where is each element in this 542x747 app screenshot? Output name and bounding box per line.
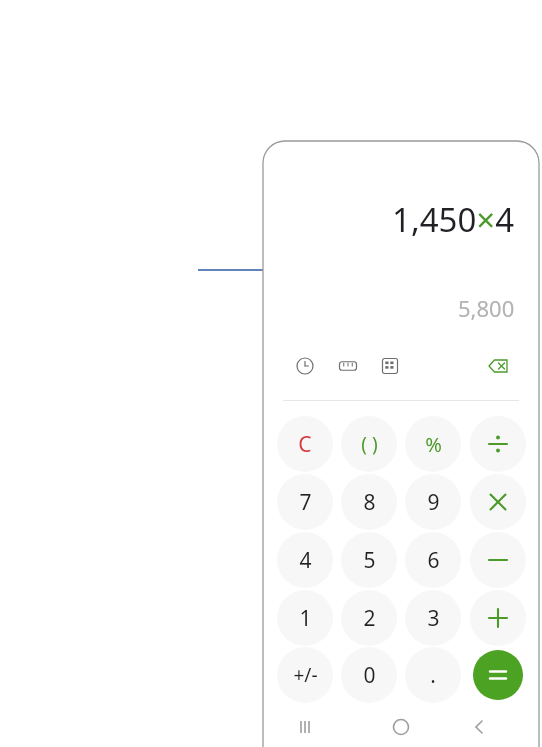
staticText: 9 [427, 488, 440, 517]
staticText: 4 [299, 546, 312, 575]
button[interactable]: 6 [405, 532, 461, 588]
staticText: 7 [299, 488, 312, 517]
staticText: 5,800 [458, 293, 515, 323]
button[interactable]: % [405, 416, 461, 472]
button[interactable]: 1 [277, 590, 333, 646]
button[interactable]: Equals [473, 650, 523, 700]
staticText: . [430, 661, 436, 690]
button[interactable]: Recents [287, 713, 323, 741]
button[interactable]: 3 [405, 590, 461, 646]
staticText: 5 [363, 546, 376, 575]
button[interactable]: Backspace [478, 346, 518, 386]
button[interactable]: ( ) [341, 416, 397, 472]
button[interactable]: Home [383, 713, 419, 741]
button[interactable]: 5 [341, 532, 397, 588]
button[interactable]: Multiply [470, 474, 526, 530]
button[interactable]: 8 [341, 474, 397, 530]
button[interactable]: +/- [277, 647, 333, 703]
button[interactable]: Unit converter [328, 346, 368, 386]
button[interactable]: 4 [277, 532, 333, 588]
staticText: ( ) [361, 431, 378, 457]
staticText: 3 [427, 604, 440, 633]
staticText: 0 [363, 661, 376, 690]
staticText: +/- [293, 662, 318, 688]
button[interactable]: 2 [341, 590, 397, 646]
button[interactable]: . [405, 647, 461, 703]
staticText: C [298, 430, 312, 459]
staticText: 1 [299, 604, 312, 633]
button[interactable]: History [285, 346, 325, 386]
staticText: % [425, 431, 442, 458]
button[interactable]: Divide [470, 416, 526, 472]
staticText: 1,450×4 [392, 197, 515, 242]
button[interactable]: Back [461, 713, 497, 741]
button[interactable]: Scientific calculator [370, 346, 410, 386]
button[interactable]: 9 [405, 474, 461, 530]
staticText: 2 [363, 604, 376, 633]
button[interactable]: Plus [470, 590, 526, 646]
staticText: 6 [427, 546, 440, 575]
button[interactable]: Minus [470, 532, 526, 588]
button[interactable]: 7 [277, 474, 333, 530]
button[interactable]: C [277, 416, 333, 472]
staticText: 8 [363, 488, 376, 517]
button[interactable]: 0 [341, 647, 397, 703]
